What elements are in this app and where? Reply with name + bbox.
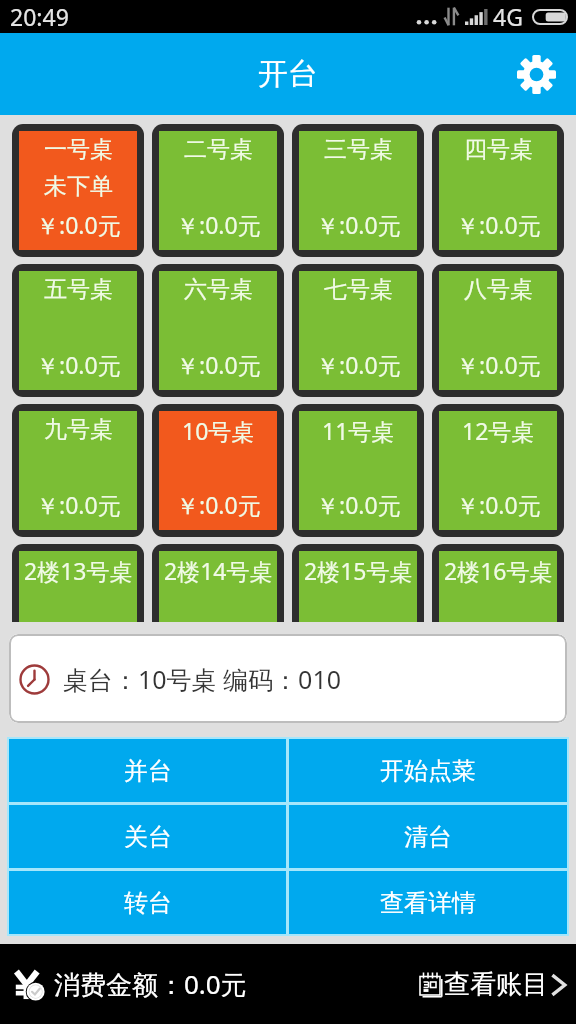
button[interactable]: 二号桌 — [159, 131, 277, 250]
button[interactable]: 转台 — [9, 871, 286, 934]
staticText: ￥:0.0元 — [36, 209, 121, 240]
staticText: 转台 — [124, 888, 172, 918]
button[interactable]: 10号桌 — [159, 411, 277, 530]
staticText: ￥:0.0元 — [176, 209, 261, 240]
button[interactable]: 查看详情 — [289, 871, 567, 934]
button[interactable]: 关台 — [9, 805, 286, 868]
button[interactable]: 2楼16号桌 — [439, 551, 557, 622]
button[interactable]: 12号桌 — [439, 411, 557, 530]
staticText: 12号桌 — [462, 415, 535, 446]
staticText: 4G — [493, 1, 523, 32]
button[interactable]: 八号桌 — [439, 271, 557, 390]
button[interactable]: 一号桌 — [19, 131, 137, 250]
button[interactable]: 七号桌 — [299, 271, 417, 390]
staticText: 三号桌 — [324, 135, 393, 164]
staticText: ￥:0.0元 — [456, 489, 541, 520]
staticText: 清台 — [404, 822, 452, 852]
staticText: ￥:0.0元 — [176, 489, 261, 520]
staticText: ￥:0.0元 — [316, 349, 401, 380]
staticText: 开台 — [258, 55, 318, 93]
staticText: ￥:0.0元 — [36, 349, 121, 380]
button[interactable]: 并台 — [9, 739, 286, 802]
staticText: ￥:0.0元 — [456, 209, 541, 240]
staticText: 20:49 — [10, 1, 69, 32]
staticText: 二号桌 — [184, 135, 253, 164]
staticText: 11号桌 — [322, 415, 395, 446]
staticText: 并台 — [124, 756, 172, 786]
staticText: 2楼13号桌 — [24, 555, 133, 586]
button[interactable]: 2楼15号桌 — [299, 551, 417, 622]
staticText: 八号桌 — [464, 275, 533, 304]
button[interactable]: Settings — [512, 50, 560, 98]
staticText: 2楼15号桌 — [304, 555, 413, 586]
button[interactable]: 九号桌 — [19, 411, 137, 530]
staticText: 查看详情 — [380, 888, 476, 918]
button[interactable]: 消费金额：0.0元 — [13, 966, 247, 1002]
button[interactable]: 桌台：10号桌 编码：010 — [9, 634, 567, 723]
staticText: 九号桌 — [44, 415, 113, 444]
staticText: 查看账目 — [444, 968, 548, 1001]
staticText: 未下单 — [44, 172, 113, 201]
staticText: 关台 — [124, 822, 172, 852]
staticText: ￥:0.0元 — [316, 489, 401, 520]
button[interactable]: 开始点菜 — [289, 739, 567, 802]
staticText: 六号桌 — [184, 275, 253, 304]
button[interactable]: 2楼13号桌 — [19, 551, 137, 622]
button[interactable]: 清台 — [289, 805, 567, 868]
staticText: 消费金额：0.0元 — [54, 966, 247, 1002]
button[interactable]: 四号桌 — [439, 131, 557, 250]
button[interactable]: 2楼14号桌 — [159, 551, 277, 622]
staticText: ￥:0.0元 — [176, 349, 261, 380]
staticText: 七号桌 — [324, 275, 393, 304]
staticText: 四号桌 — [464, 135, 533, 164]
button[interactable]: 六号桌 — [159, 271, 277, 390]
staticText: 开始点菜 — [380, 756, 476, 786]
staticText: ￥:0.0元 — [456, 349, 541, 380]
button[interactable]: 11号桌 — [299, 411, 417, 530]
staticText: 2楼14号桌 — [164, 555, 273, 586]
button[interactable]: 五号桌 — [19, 271, 137, 390]
staticText: ￥:0.0元 — [316, 209, 401, 240]
staticText: 10号桌 — [182, 415, 255, 446]
button[interactable]: 查看账目 — [418, 968, 568, 1001]
staticText: 桌台：10号桌 编码：010 — [63, 662, 342, 696]
staticText: 2楼16号桌 — [444, 555, 553, 586]
button[interactable]: 三号桌 — [299, 131, 417, 250]
staticText: 一号桌 — [44, 135, 113, 164]
staticText: 五号桌 — [44, 275, 113, 304]
staticText: ￥:0.0元 — [36, 489, 121, 520]
